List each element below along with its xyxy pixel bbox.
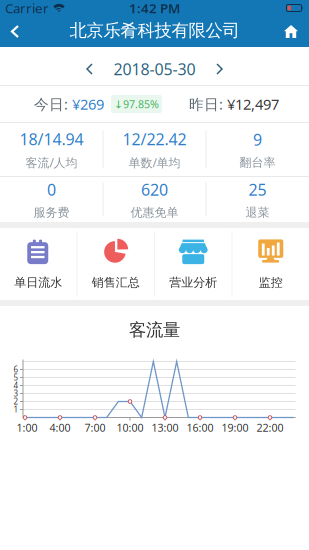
- button[interactable]: 单日流水: [0, 228, 76, 300]
- button[interactable]: [204, 55, 234, 83]
- staticText: 4:00: [49, 420, 70, 435]
- staticText: 7:00: [84, 420, 105, 435]
- staticText: 退菜: [245, 205, 269, 220]
- staticText: 今日:: [34, 94, 72, 114]
- staticText: 12/22.42: [122, 128, 186, 150]
- staticText: 4: [13, 380, 18, 391]
- button[interactable]: [74, 55, 104, 83]
- staticText: 销售汇总: [92, 275, 140, 290]
- staticText: 优惠免单: [130, 205, 178, 220]
- staticText: 1:42 PM: [129, 0, 180, 17]
- button[interactable]: 营业分析: [155, 228, 231, 300]
- staticText: ¥269: [72, 94, 104, 114]
- button[interactable]: 2018-05-30: [104, 58, 204, 80]
- staticText: 1:00: [16, 420, 37, 435]
- button[interactable]: 销售汇总: [77, 228, 154, 300]
- button[interactable]: [279, 18, 303, 45]
- staticText: 监控: [259, 275, 283, 290]
- staticText: 单日流水: [14, 275, 62, 290]
- staticText: 5: [13, 372, 18, 383]
- staticText: Carrier: [5, 0, 49, 17]
- button[interactable]: 监控: [232, 228, 309, 300]
- staticText: 19:00: [221, 420, 248, 435]
- button[interactable]: [3, 18, 27, 45]
- staticText: 2: [13, 396, 18, 407]
- staticText: 客流/人均: [25, 155, 77, 171]
- staticText: ¥12,497: [227, 94, 279, 114]
- staticText: 18/14.94: [19, 128, 83, 150]
- staticText: 3: [13, 388, 18, 399]
- staticText: 2018-05-30: [113, 58, 195, 80]
- staticText: 25: [248, 179, 266, 200]
- staticText: 620: [141, 179, 168, 200]
- staticText: ↓97.85%: [114, 97, 159, 111]
- staticText: 客流量: [129, 319, 180, 341]
- staticText: 13:00: [151, 420, 178, 435]
- staticText: 服务费: [33, 205, 69, 220]
- staticText: 9: [253, 129, 262, 150]
- staticText: 6: [13, 364, 18, 375]
- staticText: 16:00: [186, 420, 213, 435]
- staticText: 22:00: [256, 420, 283, 435]
- staticText: 单数/单均: [128, 155, 180, 171]
- staticText: 10:00: [116, 420, 143, 435]
- staticText: 翻台率: [239, 155, 275, 170]
- staticText: 营业分析: [169, 275, 217, 290]
- staticText: 昨日:: [189, 94, 227, 114]
- staticText: 1: [13, 404, 18, 415]
- staticText: 北京乐肴科技有限公司: [69, 20, 239, 41]
- staticText: 0: [47, 179, 56, 200]
